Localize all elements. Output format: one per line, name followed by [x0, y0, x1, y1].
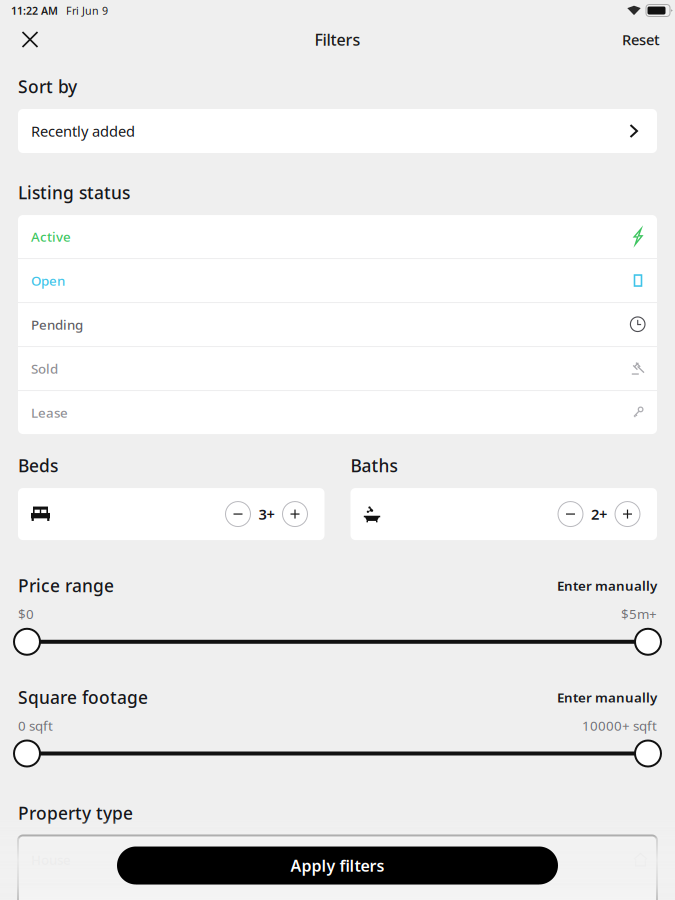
staticText: Price range — [18, 574, 114, 597]
button[interactable]: Decrease Beds — [225, 502, 250, 527]
button[interactable]: Reset — [622, 20, 660, 58]
button[interactable]: Increase Beds — [282, 502, 307, 527]
button[interactable]: Enter manually — [557, 577, 657, 594]
staticText: Filters — [314, 29, 360, 50]
staticText: Pending — [31, 316, 83, 333]
button[interactable]: Pending — [18, 303, 657, 346]
staticText: Baths — [350, 454, 397, 477]
staticText: 11:22 AM — [11, 3, 58, 18]
staticText: Enter manually — [557, 688, 657, 706]
staticText: Beds — [18, 454, 58, 477]
staticText: 3+ — [258, 504, 274, 524]
staticText: $5m+ — [621, 605, 657, 623]
button[interactable]: Active — [18, 215, 657, 258]
staticText: Fri Jun 9 — [66, 3, 108, 18]
button[interactable]: Lease — [18, 391, 657, 434]
button[interactable]: Enter manually — [557, 688, 657, 706]
button[interactable]: Condo / Townhouse — [18, 884, 657, 900]
button[interactable]: Recently added — [0, 109, 675, 153]
button[interactable]: Apply filters — [117, 846, 558, 884]
staticText: Recently added — [31, 121, 135, 141]
staticText: Property type — [18, 801, 133, 824]
button[interactable]: Increase Baths — [615, 502, 640, 527]
staticText: Sort by — [18, 75, 77, 98]
staticText: Reset — [622, 30, 660, 49]
staticText: Apply filters — [290, 855, 384, 876]
button[interactable]: Close — [8, 20, 52, 58]
button[interactable]: House — [18, 835, 657, 883]
staticText: Enter manually — [557, 577, 657, 594]
staticText: Lease — [31, 404, 68, 421]
staticText: Listing status — [18, 181, 130, 204]
staticText: $0 — [18, 605, 34, 623]
staticText: 0 sqft — [18, 717, 53, 734]
button[interactable]: Sold — [18, 347, 657, 390]
staticText: Square footage — [18, 686, 148, 709]
button[interactable]: Open — [18, 259, 657, 302]
staticText: Open — [31, 272, 65, 289]
staticText: 2+ — [591, 504, 607, 524]
staticText: 10000+ sqft — [582, 717, 657, 734]
staticText: Active — [31, 228, 71, 245]
staticText: Sold — [31, 360, 58, 377]
button[interactable]: Decrease Baths — [558, 502, 583, 527]
